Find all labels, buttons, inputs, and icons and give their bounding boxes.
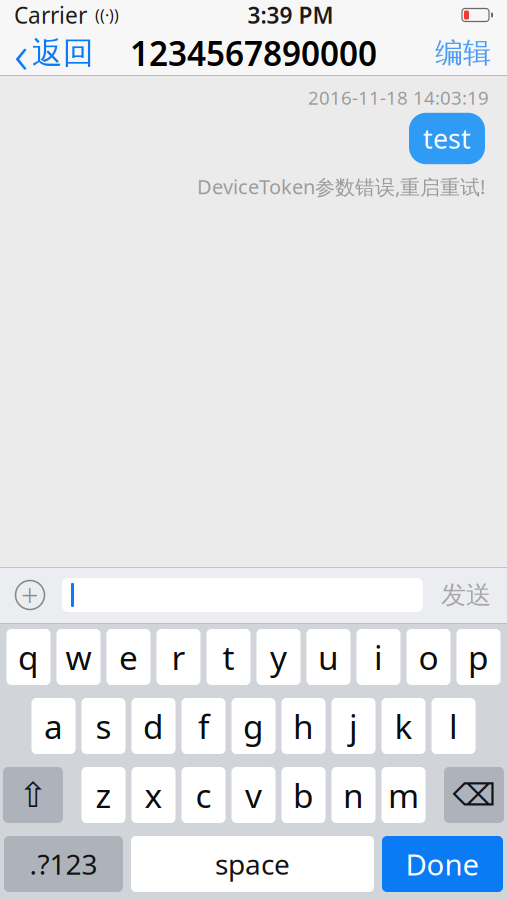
button[interactable]: j — [331, 698, 375, 754]
staticText: z — [95, 773, 111, 817]
staticText: + — [21, 575, 39, 615]
button[interactable]: w — [56, 629, 100, 685]
staticText: y — [270, 635, 287, 679]
staticText: 返回 — [32, 34, 94, 72]
staticText: t — [222, 635, 234, 679]
staticText: .?123 — [29, 845, 97, 883]
button[interactable]: Shift — [3, 767, 63, 823]
button[interactable]: k — [381, 698, 425, 754]
staticText: 编辑 — [435, 36, 491, 70]
staticText: g — [243, 704, 264, 748]
button[interactable]: 发送 — [435, 572, 497, 618]
button[interactable]: i — [356, 629, 400, 685]
staticText: d — [143, 704, 164, 748]
staticText: q — [18, 635, 39, 679]
button[interactable]: p — [456, 629, 500, 685]
button[interactable]: r — [156, 629, 200, 685]
staticText: ⌫ — [452, 778, 495, 812]
staticText: h — [293, 704, 314, 748]
button[interactable]: s — [81, 698, 125, 754]
button[interactable]: ‹ — [0, 30, 108, 76]
button[interactable]: t — [206, 629, 250, 685]
button[interactable]: a — [31, 698, 75, 754]
button[interactable]: e — [106, 629, 150, 685]
button[interactable]: x — [131, 767, 175, 823]
button[interactable]: y — [256, 629, 300, 685]
staticText: space — [215, 845, 290, 883]
button[interactable]: o — [406, 629, 450, 685]
staticText: i — [374, 635, 383, 679]
staticText: test — [423, 121, 471, 156]
staticText: c — [195, 773, 211, 817]
staticText: ‹ — [14, 18, 28, 88]
staticText: k — [394, 704, 412, 748]
button[interactable]: h — [281, 698, 325, 754]
staticText: 2016-11-18 14:03:19 — [308, 85, 489, 110]
staticText: 发送 — [441, 579, 491, 610]
staticText: l — [449, 704, 458, 748]
staticText: b — [293, 773, 314, 817]
button[interactable]: u — [306, 629, 350, 685]
button[interactable]: d — [131, 698, 175, 754]
staticText: j — [349, 704, 358, 748]
button[interactable]: b — [281, 767, 325, 823]
button[interactable]: Delete — [444, 767, 504, 823]
staticText: v — [245, 773, 262, 817]
staticText: m — [388, 773, 419, 817]
staticText: w — [65, 635, 91, 679]
button[interactable]: .?123 — [4, 836, 123, 892]
staticText: Carrier — [14, 0, 87, 30]
button[interactable]: n — [331, 767, 375, 823]
button[interactable]: q — [6, 629, 50, 685]
staticText: ⇧ — [18, 775, 47, 815]
staticText: a — [44, 704, 63, 748]
staticText: n — [343, 773, 364, 817]
button[interactable]: space — [131, 836, 374, 892]
button[interactable]: Done — [382, 836, 503, 892]
staticText: f — [198, 704, 209, 748]
button[interactable]: c — [181, 767, 225, 823]
button[interactable]: Add attachment — [10, 572, 50, 618]
staticText: x — [144, 773, 162, 817]
staticText: ((·)) — [87, 4, 119, 26]
staticText: o — [418, 635, 438, 679]
button[interactable]: z — [81, 767, 125, 823]
staticText: 3:39 PM — [247, 0, 333, 30]
staticText: p — [468, 635, 489, 679]
button[interactable]: m — [381, 767, 425, 823]
button[interactable]: f — [181, 698, 225, 754]
staticText: u — [318, 635, 339, 679]
staticText: e — [119, 635, 138, 679]
staticText: Done — [405, 844, 479, 883]
button[interactable]: g — [231, 698, 275, 754]
button[interactable]: v — [231, 767, 275, 823]
button[interactable]: 编辑 — [419, 30, 507, 76]
staticText: 1234567890000 — [130, 31, 377, 75]
button[interactable]: l — [431, 698, 475, 754]
staticText: DeviceToken参数错误,重启重试! — [197, 173, 485, 200]
staticText: r — [171, 635, 185, 679]
staticText: s — [95, 704, 111, 748]
